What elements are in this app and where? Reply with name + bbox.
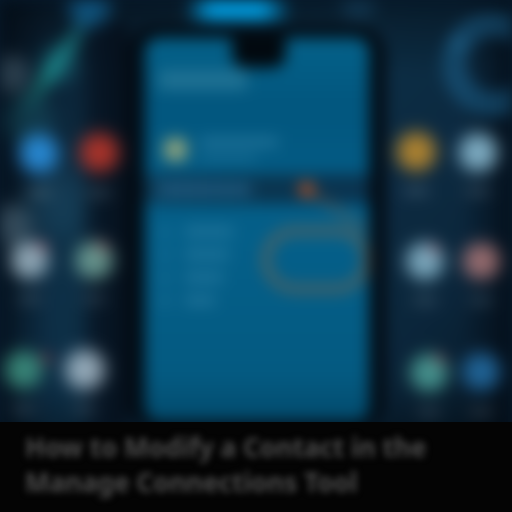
button[interactable] — [164, 138, 350, 161]
button[interactable] — [159, 70, 247, 90]
button[interactable] — [161, 243, 355, 266]
staticText: How to Modify a Contact in the — [25, 429, 427, 464]
button[interactable] — [161, 220, 355, 243]
button[interactable] — [161, 266, 355, 289]
staticText: Manage Connections Tool — [25, 464, 358, 499]
button[interactable]: How to Modify a Contact in the — [25, 429, 427, 499]
button[interactable] — [161, 289, 355, 312]
